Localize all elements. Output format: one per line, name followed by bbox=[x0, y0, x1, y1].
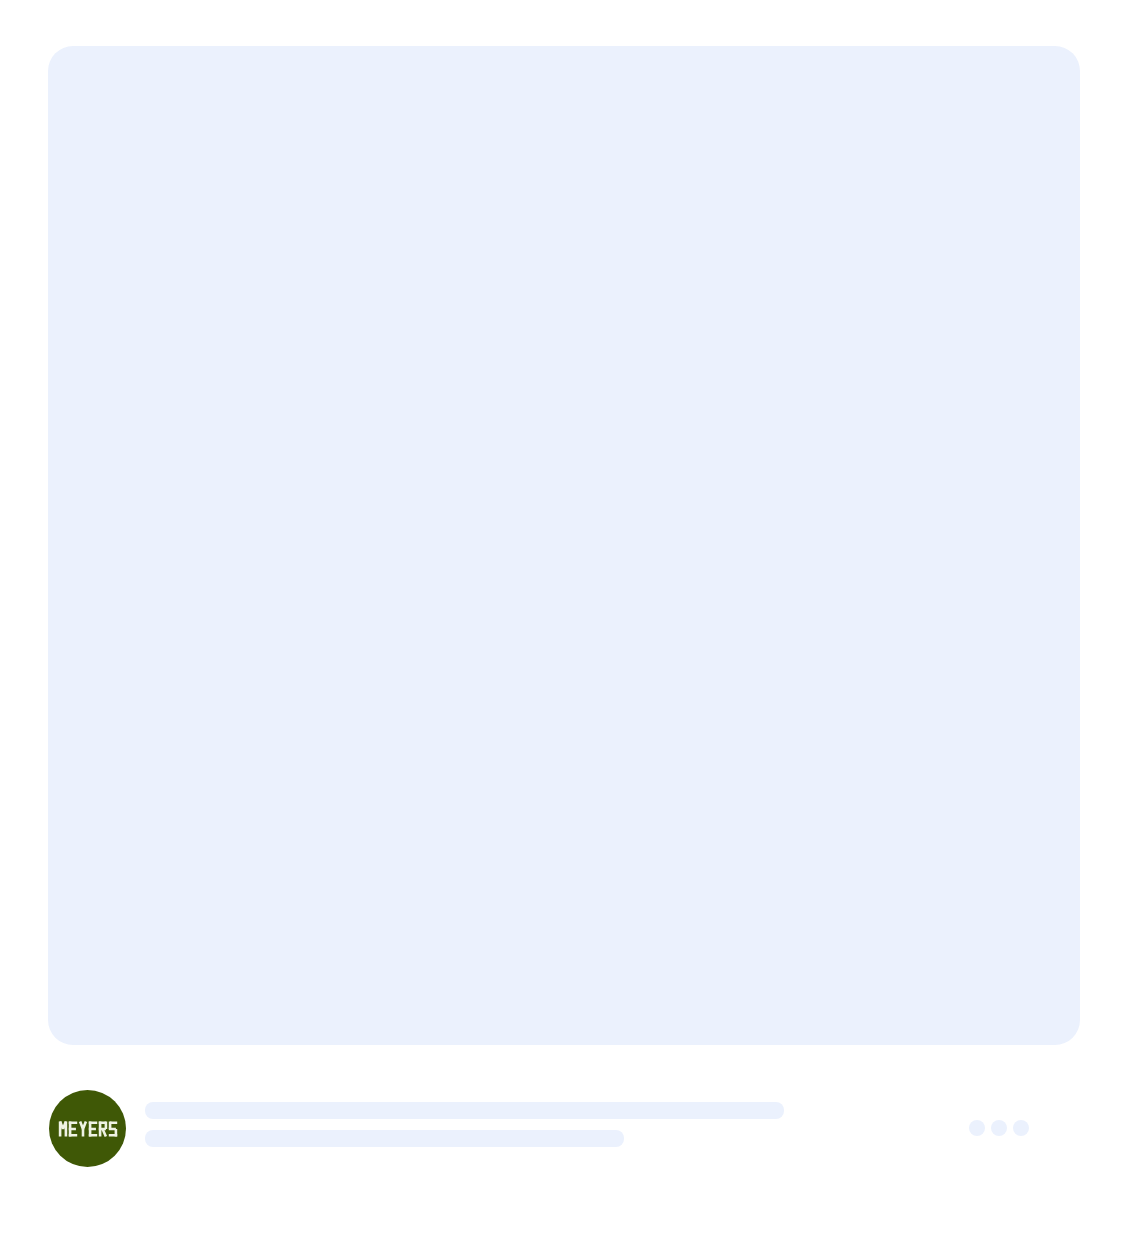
button[interactable]: More options bbox=[969, 1104, 1045, 1152]
button[interactable]: Meyers publisher profile bbox=[49, 1090, 126, 1167]
